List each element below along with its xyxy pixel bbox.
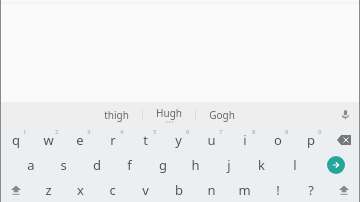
button[interactable]: v <box>129 177 162 202</box>
staticText: ? <box>308 181 314 199</box>
staticText: s <box>60 156 67 174</box>
staticText: f <box>127 156 132 174</box>
button[interactable]: thigh <box>90 102 142 127</box>
staticText: a <box>27 156 35 174</box>
staticText: 9 <box>285 128 289 136</box>
button[interactable]: s <box>47 152 80 177</box>
staticText: e <box>76 131 84 149</box>
staticText: 6 <box>186 128 190 136</box>
button[interactable]: t <box>129 127 162 152</box>
staticText: u <box>207 131 216 149</box>
staticText: thigh <box>104 108 129 122</box>
staticText: z <box>45 181 52 199</box>
staticText: y <box>175 131 182 149</box>
button[interactable]: d <box>80 152 113 177</box>
button[interactable]: o <box>261 127 294 152</box>
button[interactable]: Voice input <box>330 102 360 127</box>
button[interactable]: ! <box>261 177 294 202</box>
staticText: h <box>191 156 200 174</box>
button[interactable]: a <box>15 152 47 177</box>
button[interactable]: n <box>195 177 228 202</box>
staticText: m <box>238 181 251 199</box>
staticText: c <box>109 181 116 199</box>
button[interactable]: x <box>64 177 96 202</box>
staticText: t <box>143 131 148 149</box>
staticText: 2 <box>55 128 59 136</box>
staticText: Hugh <box>156 106 182 120</box>
staticText: d <box>93 156 101 174</box>
button[interactable]: l <box>278 152 311 177</box>
staticText: r <box>110 131 116 149</box>
button[interactable]: w <box>32 127 64 152</box>
button[interactable]: c <box>96 177 129 202</box>
staticText: o <box>274 131 282 149</box>
staticText: g <box>159 156 167 174</box>
staticText: x <box>77 181 84 199</box>
staticText: l <box>293 156 297 174</box>
staticText: 8 <box>252 128 256 136</box>
button[interactable]: Enter <box>311 152 360 177</box>
staticText: i <box>243 131 247 149</box>
button[interactable]: u <box>195 127 228 152</box>
button[interactable]: i <box>228 127 261 152</box>
button[interactable]: z <box>32 177 64 202</box>
button[interactable]: q <box>0 127 32 152</box>
button[interactable]: Backspace <box>327 127 360 152</box>
button[interactable]: Shift <box>0 177 32 202</box>
button[interactable]: e <box>64 127 96 152</box>
staticText: k <box>258 156 265 174</box>
staticText: q <box>12 131 20 149</box>
staticText: p <box>307 131 315 149</box>
staticText: 0 <box>318 128 322 136</box>
staticText: 4 <box>120 128 124 136</box>
button[interactable]: p <box>294 127 327 152</box>
button[interactable]: ? <box>294 177 327 202</box>
button[interactable]: j <box>212 152 245 177</box>
button[interactable]: m <box>228 177 261 202</box>
button[interactable]: Hugh <box>143 102 195 127</box>
button[interactable]: r <box>96 127 129 152</box>
button[interactable]: f <box>113 152 146 177</box>
staticText: ! <box>276 181 280 199</box>
staticText: b <box>175 181 183 199</box>
button[interactable]: Gogh <box>196 102 248 127</box>
button[interactable]: g <box>146 152 179 177</box>
button[interactable]: k <box>245 152 278 177</box>
staticText: v <box>142 181 149 199</box>
button[interactable]: y <box>162 127 195 152</box>
staticText: 5 <box>153 128 157 136</box>
staticText: Gogh <box>209 108 235 122</box>
staticText: j <box>227 156 231 174</box>
staticText: 3 <box>87 128 91 136</box>
staticText: w <box>43 131 54 149</box>
staticText: 7 <box>219 128 223 136</box>
button[interactable]: Shift <box>327 177 360 202</box>
staticText: n <box>207 181 216 199</box>
button[interactable]: h <box>179 152 212 177</box>
button[interactable]: b <box>162 177 195 202</box>
staticText: 1 <box>23 128 27 136</box>
